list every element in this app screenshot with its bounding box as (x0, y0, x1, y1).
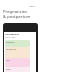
staticText: Week by week (5, 36, 16, 38)
staticText: My pregnancy (5, 33, 20, 36)
button[interactable]: My pregnancy (3, 23, 38, 72)
staticText: Pregnancy (6, 41, 15, 43)
button[interactable]: Loss (5, 58, 30, 67)
staticText: Postpartum (6, 48, 16, 50)
staticText: Track (29, 5, 35, 8)
staticText: Pregnancies & postpartum (3, 9, 31, 19)
button[interactable]: Postpartum (5, 47, 30, 58)
button[interactable]: Pregnancy (5, 40, 30, 47)
staticText: Other (6, 68, 11, 70)
staticText: Loss (6, 59, 10, 61)
button[interactable]: Other (5, 67, 30, 72)
